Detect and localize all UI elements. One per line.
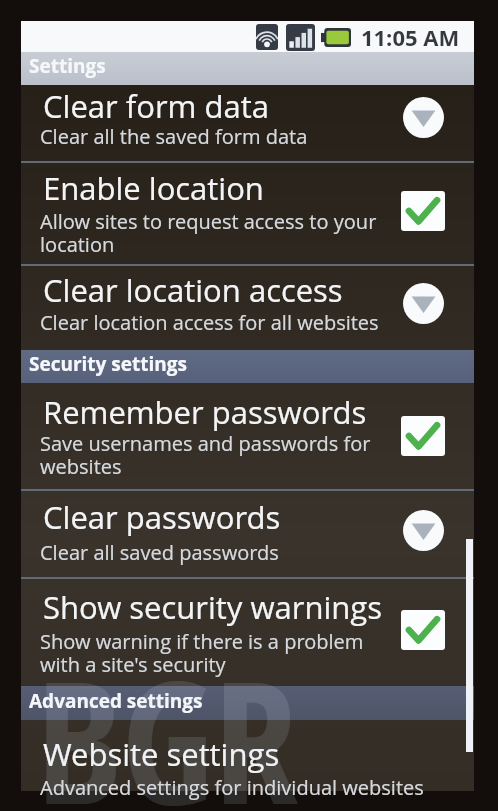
staticText: Advanced settings [29,688,203,714]
button[interactable]: Toggle setting [399,412,447,460]
button[interactable]: Open [399,279,447,327]
button[interactable]: Enable location [21,163,474,264]
staticText: Clear all saved passwords [40,539,279,566]
button[interactable]: Toggle setting [399,187,447,235]
staticText: 11:05 AM [361,22,460,52]
staticText: Security settings [29,351,187,377]
button[interactable]: Open [399,506,447,554]
button[interactable]: Show security warnings [21,579,474,686]
staticText: Website settings [43,733,280,775]
staticText: Show security warnings [43,586,383,628]
staticText: Advanced settings for individual website… [40,774,424,801]
button[interactable]: Remember passwords [21,383,474,489]
button[interactable]: Open [399,93,447,141]
button[interactable]: Clear passwords [21,491,474,577]
staticText: Clear location access for all websites [40,309,379,336]
staticText: Show warning if there is a problem with … [40,628,364,678]
staticText: Enable location [43,167,264,209]
button[interactable]: Clear form data [21,85,474,161]
staticText: Clear location access [43,269,343,311]
staticText: Save usernames and passwords for website… [40,430,371,480]
staticText: Settings [29,53,106,79]
button[interactable]: Clear location access [21,266,474,350]
staticText: BGR [36,623,298,811]
staticText: Allow sites to request access to your lo… [40,208,377,258]
staticText: Clear passwords [43,496,281,538]
staticText: Remember passwords [43,391,367,433]
button[interactable]: Toggle setting [399,606,447,654]
button[interactable]: Website settings [21,720,474,791]
staticText: Clear form data [43,85,269,127]
staticText: Clear all the saved form data [40,123,308,150]
